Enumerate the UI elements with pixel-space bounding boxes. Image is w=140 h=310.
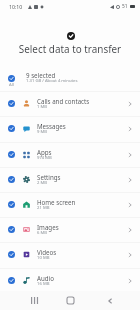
button[interactable]: Calls and contacts xyxy=(0,91,140,116)
staticText: Select data to transfer xyxy=(0,42,140,55)
staticText: Calls and contacts xyxy=(37,97,90,105)
button[interactable]: Apps xyxy=(0,142,140,167)
button[interactable]: Videos xyxy=(0,242,140,267)
staticText: 16 MB xyxy=(37,281,50,287)
staticText: Videos xyxy=(37,248,57,256)
staticText: All xyxy=(9,82,14,88)
button[interactable]: Home screen xyxy=(0,192,140,217)
staticText: 9 MB xyxy=(37,129,48,135)
button[interactable]: Recents xyxy=(25,291,43,310)
button[interactable]: Settings xyxy=(0,167,140,192)
staticText: 1 MB xyxy=(37,104,48,110)
staticText: Apps xyxy=(37,148,52,156)
staticText: Settings xyxy=(37,173,61,181)
staticText: Images xyxy=(37,223,59,231)
staticText: 21 MB xyxy=(37,205,50,211)
staticText: 6 MB xyxy=(37,230,48,236)
button[interactable]: Images xyxy=(0,217,140,242)
staticText: 9 selected xyxy=(26,71,56,79)
button[interactable]: All xyxy=(0,66,140,90)
button[interactable]: Messages xyxy=(0,116,140,141)
staticText: Messages xyxy=(37,122,66,130)
staticText: 1.31 GB / About 4 minutes xyxy=(26,78,78,84)
staticText: 10 MB xyxy=(37,255,50,261)
staticText: 974 MB xyxy=(37,155,52,161)
staticText: Audio xyxy=(37,274,54,282)
button[interactable]: Audio xyxy=(0,268,140,293)
button[interactable]: Home xyxy=(61,291,79,310)
staticText: Home screen xyxy=(37,198,76,206)
staticText: 10:10 xyxy=(9,3,23,10)
staticText: 51 xyxy=(122,3,128,10)
staticText: 2 MB xyxy=(37,180,48,186)
button[interactable]: Back xyxy=(101,291,119,310)
